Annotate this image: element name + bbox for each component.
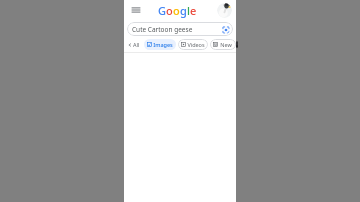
button[interactable]: Account <box>217 3 232 18</box>
button[interactable]: Google Lens <box>221 25 230 34</box>
staticText: g <box>180 3 187 18</box>
button[interactable]: Menu <box>129 3 143 17</box>
button[interactable]: Videos <box>178 39 208 50</box>
staticText: All <box>133 41 140 48</box>
staticText: o <box>166 3 173 18</box>
staticText: e <box>190 3 197 18</box>
staticText: News <box>219 41 233 48</box>
staticText: Videos <box>187 41 205 48</box>
button[interactable]: Cute Cartoon geese <box>127 22 233 36</box>
button[interactable]: News <box>210 39 236 50</box>
staticText: l <box>187 3 190 18</box>
staticText: Cute Cartoon geese <box>132 25 221 34</box>
staticText: o <box>173 3 180 18</box>
button[interactable]: Google <box>158 3 197 18</box>
button[interactable]: All <box>126 39 142 50</box>
staticText: Images <box>153 41 173 48</box>
button[interactable]: Images <box>144 39 176 50</box>
staticText: G <box>158 3 166 18</box>
